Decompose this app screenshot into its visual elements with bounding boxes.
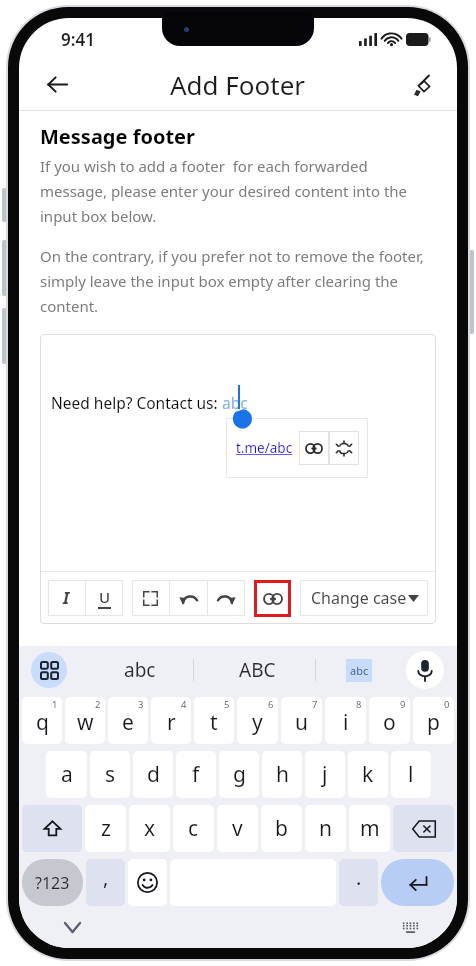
- staticText: z: [101, 814, 111, 843]
- button[interactable]: o: [369, 697, 410, 744]
- staticText: n: [319, 814, 332, 843]
- staticText: abc: [350, 663, 369, 678]
- staticText: 8: [356, 698, 362, 711]
- staticText: 9:41: [61, 28, 95, 51]
- button[interactable]: a: [46, 751, 87, 798]
- staticText: 0: [444, 698, 450, 711]
- button[interactable]: Redo: [208, 580, 245, 616]
- staticText: I: [63, 587, 70, 609]
- button[interactable]: Switch keyboard: [393, 910, 427, 944]
- staticText: o: [383, 708, 396, 737]
- staticText: ,: [103, 864, 109, 891]
- button[interactable]: f: [176, 751, 216, 798]
- staticText: t: [210, 708, 218, 737]
- button[interactable]: v: [217, 805, 258, 852]
- button[interactable]: Insert link: [254, 580, 291, 617]
- button[interactable]: Change case: [300, 580, 428, 616]
- button[interactable]: h: [262, 751, 302, 798]
- button[interactable]: c: [173, 805, 214, 852]
- staticText: j: [322, 760, 328, 789]
- staticText: i: [343, 708, 349, 737]
- staticText: Need help? Contact us:: [51, 392, 222, 413]
- button[interactable]: m: [349, 805, 390, 852]
- button[interactable]: l: [391, 751, 431, 798]
- button[interactable]: z: [85, 805, 126, 852]
- button[interactable]: q: [22, 697, 62, 744]
- staticText: 9: [400, 698, 406, 711]
- button[interactable]: r: [151, 697, 191, 744]
- button[interactable]: i: [325, 697, 366, 744]
- button[interactable]: Underline: [86, 580, 123, 616]
- button[interactable]: Italic: [48, 580, 85, 616]
- staticText: 1: [52, 698, 58, 711]
- staticText: q: [36, 708, 49, 737]
- button[interactable]: Emoji: [128, 859, 167, 906]
- button[interactable]: Text case suggestion: [346, 659, 372, 682]
- staticText: U: [99, 587, 111, 607]
- button[interactable]: Back: [35, 62, 79, 106]
- button[interactable]: y: [237, 697, 278, 744]
- staticText: 3: [138, 698, 144, 711]
- staticText: 2: [95, 698, 101, 711]
- staticText: f: [192, 760, 200, 789]
- button[interactable]: Voice input: [406, 651, 444, 689]
- button[interactable]: b: [261, 805, 302, 852]
- button[interactable]: Keyboard options: [31, 652, 67, 688]
- button[interactable]: Clear footer: [401, 62, 445, 106]
- staticText: d: [147, 760, 160, 789]
- button[interactable]: d: [133, 751, 173, 798]
- button[interactable]: Remove link: [329, 431, 359, 465]
- button[interactable]: w: [65, 697, 105, 744]
- button[interactable]: t.me/abc: [236, 433, 293, 463]
- button[interactable]: Hide keyboard: [55, 910, 89, 944]
- staticText: a: [61, 760, 73, 789]
- button[interactable]: x: [129, 805, 170, 852]
- staticText: h: [276, 760, 289, 789]
- staticText: g: [233, 760, 246, 789]
- button[interactable]: abc: [94, 648, 186, 692]
- staticText: x: [144, 814, 156, 843]
- staticText: 6: [268, 698, 274, 711]
- staticText: abc: [222, 392, 248, 413]
- staticText: Add Footer: [170, 67, 306, 102]
- staticText: ABC: [239, 657, 276, 683]
- staticText: 7: [312, 698, 318, 711]
- button[interactable]: ?123: [22, 859, 83, 906]
- staticText: t.me/abc: [236, 439, 293, 457]
- button[interactable]: t: [194, 697, 234, 744]
- button[interactable]: k: [348, 751, 388, 798]
- staticText: If you wish to add a footer for each for…: [40, 156, 436, 226]
- staticText: y: [252, 708, 263, 737]
- button[interactable]: s: [90, 751, 130, 798]
- staticText: 4: [181, 698, 187, 711]
- button[interactable]: e: [108, 697, 148, 744]
- staticText: .: [356, 864, 362, 891]
- staticText: 5: [224, 698, 230, 711]
- button[interactable]: Shift: [22, 805, 82, 852]
- button[interactable]: u: [281, 697, 322, 744]
- staticText: Message footer: [40, 123, 195, 150]
- button[interactable]: ABC: [211, 648, 303, 692]
- button[interactable]: p: [413, 697, 454, 744]
- button[interactable]: Undo: [170, 580, 207, 616]
- button[interactable]: ,: [86, 859, 125, 906]
- button[interactable]: Enter: [381, 859, 454, 906]
- button[interactable]: n: [305, 805, 346, 852]
- staticText: l: [408, 760, 414, 789]
- button[interactable]: .: [339, 859, 378, 906]
- staticText: w: [77, 708, 94, 737]
- staticText: m: [360, 814, 380, 843]
- staticText: ?123: [35, 872, 70, 894]
- button[interactable]: Backspace: [393, 805, 454, 852]
- button[interactable]: g: [219, 751, 259, 798]
- staticText: s: [105, 760, 116, 789]
- button[interactable]: Expand: [132, 580, 169, 616]
- button[interactable]: j: [305, 751, 345, 798]
- staticText: e: [122, 708, 134, 737]
- button[interactable]: Open link: [299, 431, 329, 465]
- staticText: c: [188, 814, 199, 843]
- staticText: u: [295, 708, 308, 737]
- staticText: Change case: [311, 587, 407, 609]
- staticText: k: [362, 760, 374, 789]
